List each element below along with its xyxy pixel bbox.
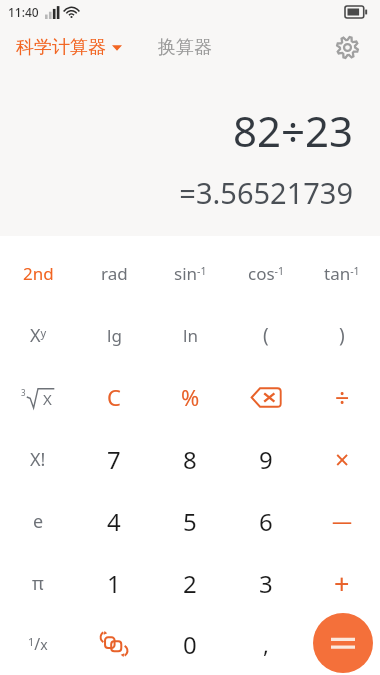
staticText: — [332, 508, 352, 535]
button[interactable]: Xy [0, 304, 76, 366]
button[interactable]: Settings [328, 28, 366, 66]
staticText: , [263, 629, 269, 659]
staticText: 6 [259, 505, 273, 538]
staticText: C [107, 382, 121, 412]
staticText: ÷ [335, 380, 350, 414]
button[interactable]: ÷ [304, 366, 380, 428]
staticText: 科学计算器 [16, 36, 106, 59]
staticText: X! [30, 447, 46, 472]
button[interactable]: Equals [313, 613, 373, 673]
staticText: cos-1 [248, 262, 285, 285]
staticText: % [181, 382, 200, 412]
button[interactable]: 9 [228, 428, 304, 490]
button[interactable]: 5 [152, 490, 228, 552]
button[interactable]: rad [76, 242, 152, 304]
button[interactable]: Backspace [228, 366, 304, 428]
staticText: Xy [30, 323, 47, 348]
staticText: tan-1 [324, 262, 360, 285]
staticText: e [33, 509, 44, 534]
staticText: rad [101, 262, 128, 285]
button[interactable]: π [0, 552, 76, 614]
staticText: π [32, 571, 44, 596]
staticText: 8 [183, 443, 197, 476]
staticText: 5 [183, 505, 197, 538]
button[interactable]: 换算器 [152, 32, 218, 63]
button[interactable]: ln [152, 304, 228, 366]
button[interactable]: 2 [152, 552, 228, 614]
button[interactable]: ( [228, 304, 304, 366]
button[interactable]: % [152, 366, 228, 428]
staticText: × [335, 442, 350, 476]
button[interactable]: Convert [76, 613, 152, 675]
staticText: 3 [259, 567, 273, 600]
button[interactable]: + [304, 552, 380, 614]
staticText: ( [263, 322, 269, 348]
staticText: =3.56521739 [179, 173, 353, 212]
button[interactable]: 1 [76, 552, 152, 614]
button[interactable]: e [0, 490, 76, 552]
button[interactable]: — [304, 490, 380, 552]
staticText: lg [107, 324, 122, 347]
button[interactable]: 2nd [0, 242, 76, 304]
staticText: ) [339, 322, 345, 348]
button[interactable]: ) [304, 304, 380, 366]
staticText: + [334, 565, 350, 602]
button[interactable]: 4 [76, 490, 152, 552]
staticText: 9 [259, 443, 273, 476]
button[interactable]: 7 [76, 428, 152, 490]
button[interactable]: tan-1 [304, 242, 380, 304]
button[interactable]: 科学计算器 [10, 32, 128, 63]
staticText: 换算器 [158, 36, 212, 59]
button[interactable]: 3 [228, 552, 304, 614]
staticText: 2 [183, 567, 197, 600]
staticText: 82÷23 [232, 102, 353, 159]
button[interactable]: 8 [152, 428, 228, 490]
button[interactable]: C [76, 366, 152, 428]
staticText: 2nd [23, 262, 54, 285]
button[interactable]: 6 [228, 490, 304, 552]
staticText: 3 [21, 387, 26, 398]
staticText: 1/x [28, 633, 48, 655]
staticText: 4 [107, 505, 121, 538]
button[interactable]: cube root [0, 366, 76, 428]
button[interactable]: lg [76, 304, 152, 366]
button[interactable]: one over x [0, 613, 76, 675]
staticText: ln [183, 324, 198, 347]
staticText: 11:40 [8, 4, 39, 20]
staticText: 7 [107, 443, 121, 476]
button[interactable]: sin-1 [152, 242, 228, 304]
button[interactable]: cos-1 [228, 242, 304, 304]
button[interactable]: 0 [152, 613, 228, 675]
staticText: 1 [107, 567, 121, 600]
staticText: sin-1 [174, 262, 207, 285]
button[interactable]: X! [0, 428, 76, 490]
button[interactable]: , [228, 613, 304, 675]
button[interactable]: × [304, 428, 380, 490]
staticText: 0 [183, 628, 197, 661]
staticText: X [43, 389, 52, 409]
